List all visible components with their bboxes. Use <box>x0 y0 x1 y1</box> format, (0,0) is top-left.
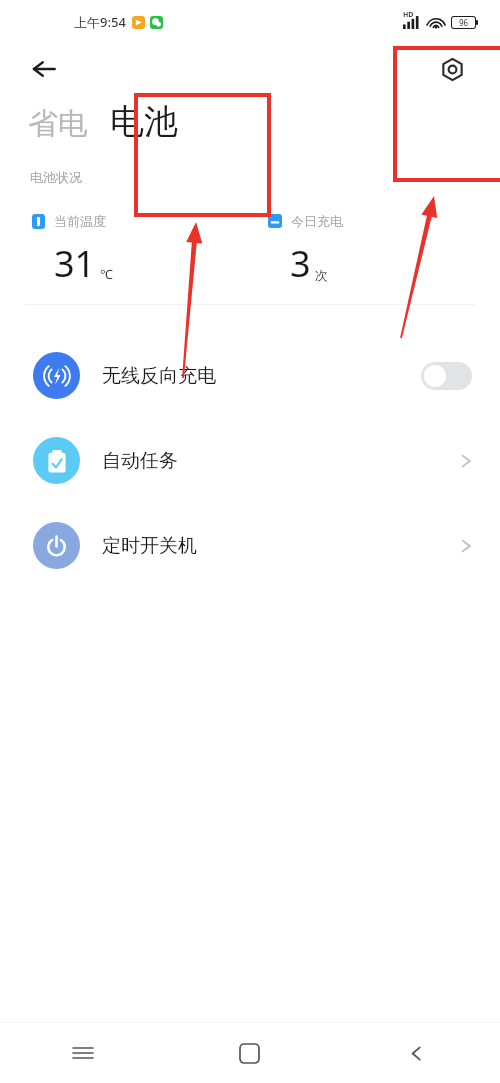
staticText: 无线反向充电 <box>102 364 216 388</box>
staticText: 电池状况 <box>30 169 82 185</box>
staticText: 上午9:54 <box>74 13 126 31</box>
button[interactable]: Recent apps <box>0 1023 166 1083</box>
button[interactable]: 电池 <box>110 100 178 143</box>
staticText: 次 <box>315 267 328 283</box>
staticText: ℃ <box>100 265 113 283</box>
button[interactable]: Back <box>333 1023 500 1083</box>
staticText: 自动任务 <box>102 449 178 473</box>
button[interactable]: 无线反向充电 <box>0 333 500 418</box>
staticText: 当前温度 <box>54 213 106 229</box>
staticText: 电池 <box>110 100 178 143</box>
staticText: 96 <box>459 17 469 28</box>
button[interactable]: Toggle <box>421 362 472 390</box>
button[interactable]: Back <box>22 47 66 91</box>
staticText: 定时开关机 <box>102 534 197 558</box>
staticText: 今日充电 <box>291 213 343 229</box>
button[interactable]: 自动任务 <box>0 418 500 503</box>
staticText: 3 <box>290 239 311 288</box>
staticText: HD <box>403 10 414 20</box>
button[interactable]: Settings <box>430 47 474 91</box>
staticText: 31 <box>54 239 96 288</box>
button[interactable]: Home <box>166 1023 333 1083</box>
button[interactable]: 定时开关机 <box>0 503 500 588</box>
button[interactable]: 省电 <box>28 105 88 143</box>
staticText: 省电 <box>28 105 88 143</box>
